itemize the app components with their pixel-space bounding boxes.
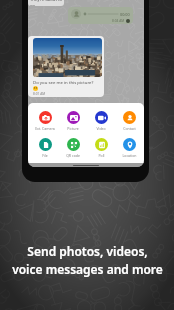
staticText: 8:01 AM bbox=[33, 92, 46, 96]
staticText: Picture bbox=[67, 126, 79, 131]
staticText: Contact bbox=[123, 126, 136, 131]
staticText: Poll bbox=[98, 153, 105, 158]
button[interactable]: Picture bbox=[60, 111, 86, 131]
button[interactable]: File bbox=[32, 138, 58, 158]
staticText: Do you see me in this picture? bbox=[33, 79, 94, 85]
button[interactable]: Location bbox=[116, 138, 142, 158]
button[interactable]: Poll bbox=[88, 138, 114, 158]
button[interactable]: QR code bbox=[60, 138, 86, 158]
staticText: Video bbox=[96, 126, 106, 131]
staticText: Ext. Camera bbox=[35, 126, 55, 131]
staticText: Send photos, videos, bbox=[27, 243, 148, 259]
staticText: 8:04 AM bbox=[112, 19, 125, 23]
button[interactable]: Contact bbox=[116, 111, 142, 131]
button[interactable]: Ext. Camera bbox=[32, 111, 58, 131]
staticText: voice messages and more bbox=[12, 261, 163, 277]
staticText: File bbox=[42, 153, 48, 158]
button[interactable]: Video bbox=[88, 111, 114, 131]
staticText: QR code bbox=[66, 153, 80, 158]
staticText: They're about to go bbox=[30, 0, 64, 6]
staticText: 00:00 bbox=[120, 12, 130, 17]
staticText: Location bbox=[122, 153, 137, 158]
